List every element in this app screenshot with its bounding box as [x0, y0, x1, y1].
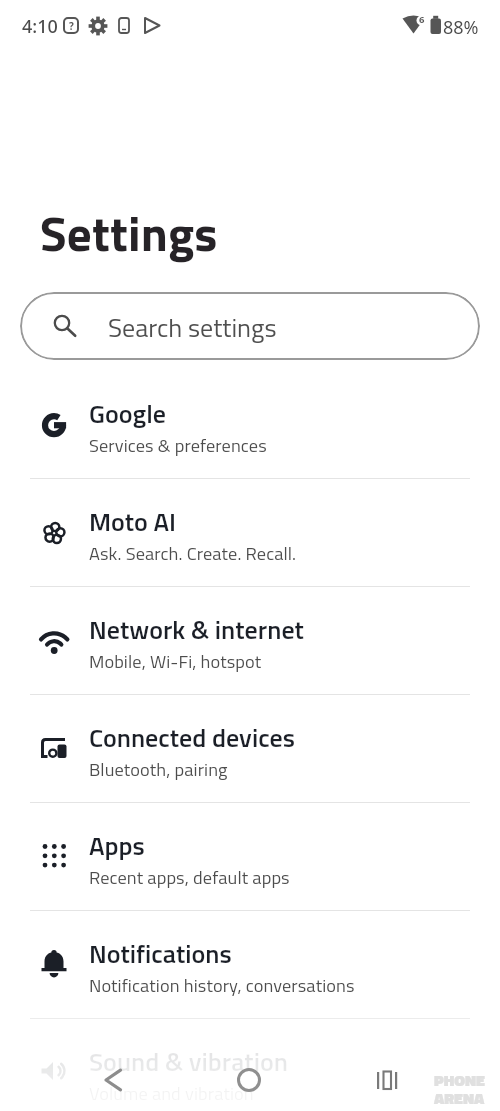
button[interactable]: Google — [0, 371, 500, 478]
button[interactable] — [100, 1066, 128, 1094]
staticText: PHONE — [434, 1068, 485, 1092]
button[interactable]: Connected devices — [0, 695, 500, 802]
staticText: Volume and vibration — [89, 1079, 254, 1107]
staticText: Sound & vibration — [89, 1042, 288, 1082]
staticText: Ask. Search. Create. Recall. — [89, 539, 297, 567]
button[interactable] — [373, 1066, 401, 1094]
staticText: Bluetooth, pairing — [89, 755, 228, 783]
staticText: 4:10 — [22, 14, 58, 39]
staticText: Connected devices — [89, 718, 295, 758]
staticText: ? — [69, 19, 74, 33]
staticText: Notification history, conversations — [89, 971, 355, 999]
staticText: Moto AI — [89, 502, 177, 542]
staticText: Services & preferences — [89, 431, 267, 459]
button[interactable]: Sound & vibration — [0, 1019, 500, 1111]
staticText: Notifications — [89, 934, 232, 974]
button[interactable]: Notifications — [0, 911, 500, 1018]
button[interactable]: Network & internet — [0, 587, 500, 694]
staticText: Google — [89, 394, 166, 434]
staticText: Search settings — [108, 308, 277, 348]
staticText: Apps — [89, 826, 145, 866]
staticText: 88% — [443, 15, 479, 40]
staticText: 6 — [419, 13, 425, 26]
staticText: Network & internet — [89, 610, 304, 650]
button[interactable]: Apps — [0, 803, 500, 910]
button[interactable]: Search settings — [20, 292, 480, 360]
staticText: ARENA — [434, 1086, 485, 1110]
staticText: Settings — [40, 195, 218, 270]
staticText: Recent apps, default apps — [89, 863, 290, 891]
button[interactable] — [235, 1066, 263, 1094]
button[interactable]: Moto AI — [0, 479, 500, 586]
staticText: Mobile, Wi-Fi, hotspot — [89, 647, 262, 675]
